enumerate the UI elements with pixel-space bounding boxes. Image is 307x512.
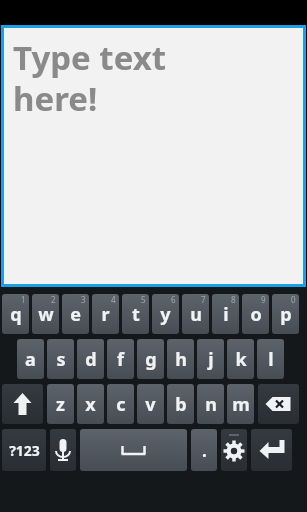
button[interactable]: d — [77, 339, 104, 379]
staticText: u — [190, 302, 202, 327]
staticText: m — [232, 392, 250, 417]
staticText: h — [175, 347, 187, 372]
button[interactable]: h — [167, 339, 194, 379]
staticText: . — [202, 439, 207, 462]
staticText: i — [223, 302, 229, 327]
staticText: l — [268, 347, 274, 372]
staticText: b — [175, 392, 187, 417]
staticText: s — [56, 347, 66, 372]
staticText: r — [101, 302, 110, 327]
button[interactable]: m — [227, 384, 254, 424]
button[interactable]: a — [17, 339, 44, 379]
button[interactable]: t — [122, 294, 149, 334]
button[interactable]: Space — [80, 429, 187, 471]
button[interactable]: j — [197, 339, 224, 379]
staticText: 4 — [111, 294, 116, 305]
staticText: 9 — [261, 294, 266, 305]
button[interactable]: Shift — [2, 384, 43, 424]
staticText: d — [85, 347, 97, 372]
button[interactable]: o — [242, 294, 269, 334]
button[interactable]: Enter — [251, 429, 292, 471]
button[interactable]: l — [257, 339, 284, 379]
button[interactable]: i — [212, 294, 239, 334]
staticText: w — [38, 302, 54, 327]
staticText: q — [10, 302, 22, 327]
staticText: c — [116, 392, 126, 417]
staticText: z — [56, 392, 65, 417]
staticText: k — [235, 347, 247, 372]
staticText: 6 — [171, 294, 176, 305]
button[interactable]: g — [137, 339, 164, 379]
button[interactable]: w — [32, 294, 59, 334]
staticText: 2 — [51, 294, 56, 305]
button[interactable]: z — [47, 384, 74, 424]
button[interactable]: x — [77, 384, 104, 424]
staticText: v — [145, 392, 156, 417]
staticText: p — [280, 302, 292, 327]
button[interactable]: c — [107, 384, 134, 424]
button[interactable]: p — [272, 294, 299, 334]
button[interactable]: u — [182, 294, 209, 334]
button[interactable]: y — [152, 294, 179, 334]
staticText: t — [132, 302, 140, 327]
staticText: 1 — [21, 294, 26, 305]
staticText: x — [85, 392, 96, 417]
button[interactable]: f — [107, 339, 134, 379]
button[interactable]: Voice input — [50, 429, 76, 471]
staticText: 3 — [81, 294, 86, 305]
staticText: Type text here! — [13, 35, 167, 121]
staticText: a — [25, 347, 36, 372]
staticText: 0 — [291, 294, 296, 305]
button[interactable]: b — [167, 384, 194, 424]
button[interactable]: r — [92, 294, 119, 334]
staticText: o — [250, 302, 262, 327]
staticText: j — [208, 347, 214, 372]
staticText: e — [70, 302, 81, 327]
button[interactable]: n — [197, 384, 224, 424]
staticText: n — [205, 392, 217, 417]
button[interactable]: e — [62, 294, 89, 334]
button[interactable]: v — [137, 384, 164, 424]
button[interactable]: q — [2, 294, 29, 334]
staticText: 8 — [231, 294, 236, 305]
button[interactable]: s — [47, 339, 74, 379]
button[interactable]: Type text here! — [4, 28, 303, 284]
button[interactable]: ?123 — [2, 429, 46, 471]
staticText: f — [117, 347, 124, 372]
staticText: y — [160, 302, 171, 327]
button[interactable]: k — [227, 339, 254, 379]
button[interactable]: . — [191, 429, 217, 471]
button[interactable]: Backspace — [258, 384, 299, 424]
staticText: g — [145, 347, 157, 372]
staticText: ?123 — [9, 441, 40, 460]
staticText: 5 — [141, 294, 146, 305]
staticText: 7 — [201, 294, 206, 305]
button[interactable]: Settings — [221, 429, 247, 471]
